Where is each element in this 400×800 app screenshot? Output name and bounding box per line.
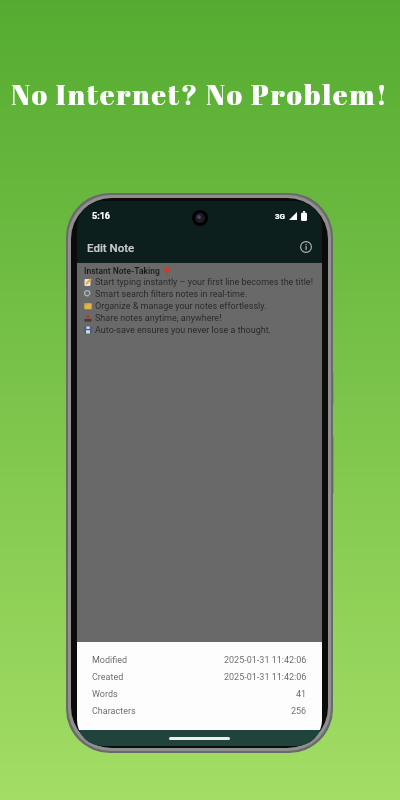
staticText: 2025-01-31 11:42:06 (224, 655, 307, 666)
staticText: No Internet? No Problem! (0, 75, 400, 113)
staticText: 5:16 (92, 211, 111, 222)
button[interactable]: Organize & manage your notes effortlessl… (84, 300, 318, 312)
staticText: Modified (92, 655, 128, 666)
staticText: 256 (291, 706, 307, 717)
button[interactable]: Share notes anytime, anywhere! (84, 312, 318, 324)
staticText: 41 (296, 689, 307, 700)
button[interactable] (300, 241, 312, 253)
staticText: Words (92, 689, 118, 700)
staticText: Auto-save ensures you never lose a thoug… (95, 325, 271, 336)
button[interactable]: Words (92, 686, 307, 703)
staticText: Created (92, 672, 124, 683)
button[interactable]: Created (92, 669, 307, 686)
button[interactable]: Characters (92, 703, 307, 720)
button[interactable]: Modified (92, 652, 307, 669)
staticText: 3G (275, 212, 286, 221)
staticText: 2025-01-31 11:42:06 (224, 672, 307, 683)
staticText: Smart search filters notes in real-time. (95, 289, 248, 300)
button[interactable]: Start typing instantly – your first line… (84, 276, 318, 288)
button[interactable]: Smart search filters notes in real-time. (84, 288, 318, 300)
staticText: Instant Note-Taking (84, 266, 163, 276)
staticText: Edit Note (87, 241, 135, 254)
staticText: Share notes anytime, anywhere! (95, 313, 222, 324)
button[interactable]: Auto-save ensures you never lose a thoug… (84, 324, 318, 336)
staticText: Characters (92, 706, 136, 717)
staticText: Start typing instantly – your first line… (95, 277, 313, 288)
staticText: Organize & manage your notes effortlessl… (95, 301, 267, 312)
